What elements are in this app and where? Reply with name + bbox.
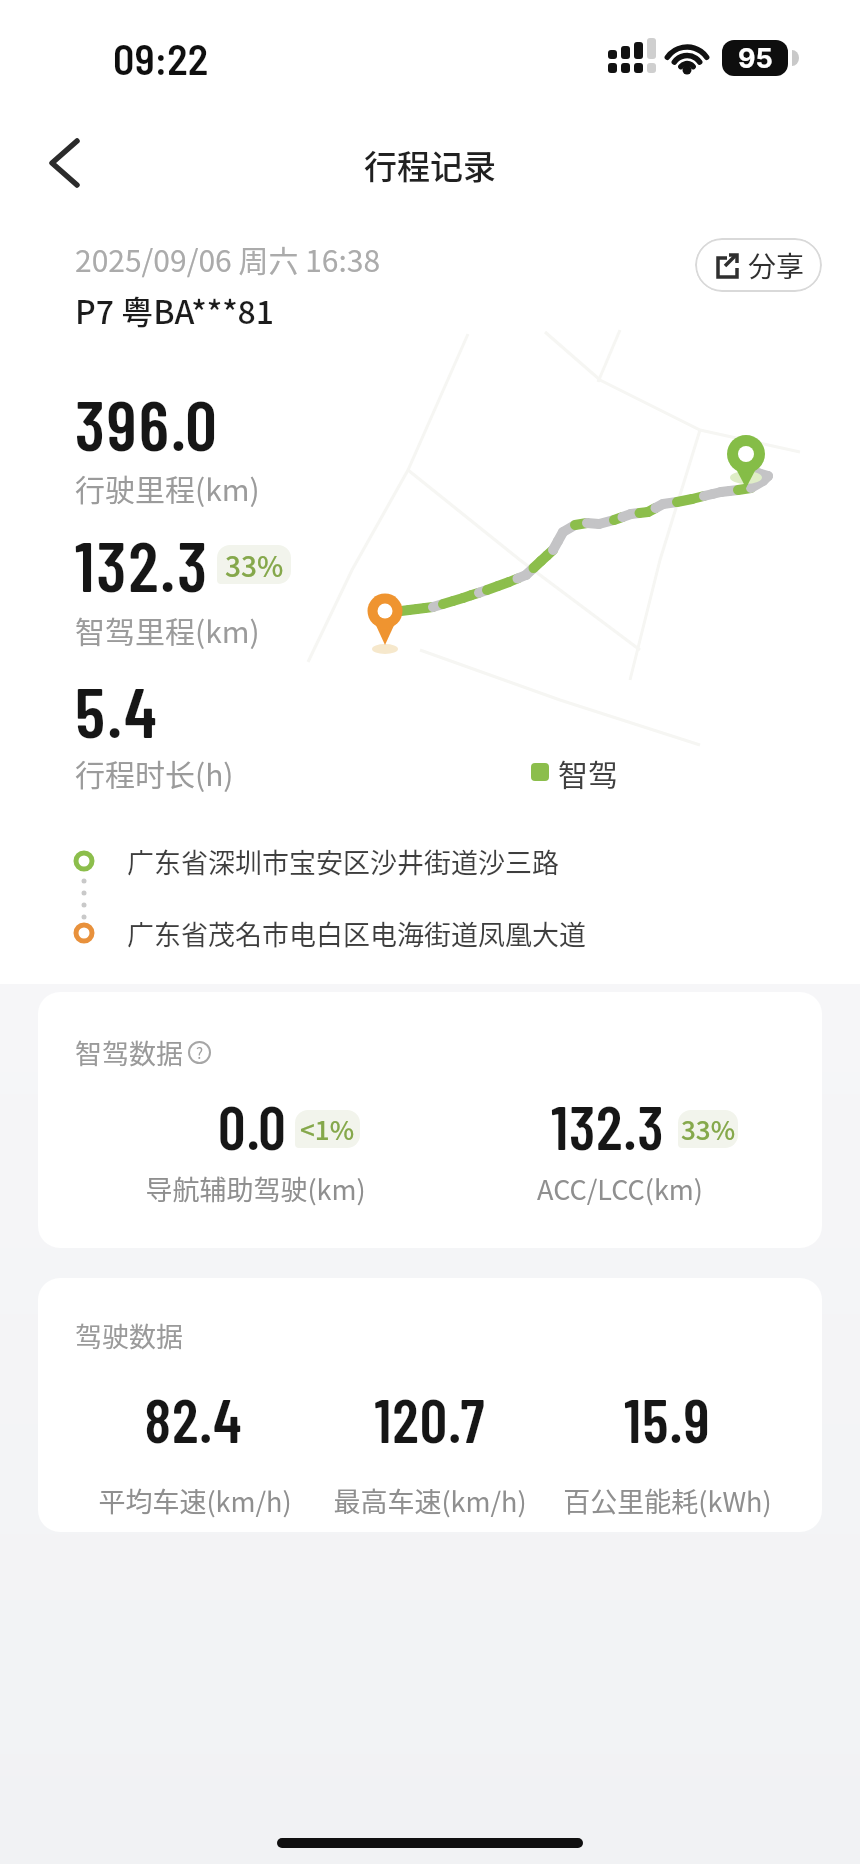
staticText: 分享 (748, 245, 805, 286)
staticText: 09:22 (113, 33, 209, 83)
staticText: 智驾里程(km) (75, 608, 260, 651)
staticText: 平均车速(km/h) (98, 1481, 292, 1520)
staticText: 驾驶数据 (75, 1316, 183, 1355)
staticText: 396.0 (75, 381, 219, 461)
staticText: 百公里能耗(kWh) (563, 1481, 772, 1520)
staticText: 行程记录 (364, 141, 496, 189)
staticText: 33% (681, 1110, 736, 1148)
staticText: 0.0 (218, 1089, 287, 1162)
staticText: ? (196, 1042, 204, 1064)
button[interactable]: 分享 (695, 238, 822, 292)
staticText: 132.3 (75, 522, 210, 602)
staticText: 行程时长(h) (75, 751, 234, 794)
staticText: 15.9 (624, 1382, 711, 1455)
staticText: ACC/LCC(km) (537, 1169, 703, 1208)
staticText: 120.7 (374, 1382, 486, 1455)
staticText: <1% (300, 1110, 355, 1148)
staticText: 最高车速(km/h) (333, 1481, 527, 1520)
staticText: 导航辅助驾驶(km) (145, 1169, 366, 1208)
staticText: 2025/09/06 周六 16:38 (75, 237, 381, 280)
staticText: 智驾数据 (75, 1033, 183, 1072)
staticText: 广东省茂名市电白区电海街道凤凰大道 (127, 914, 586, 953)
staticText: 广东省深圳市宝安区沙井街道沙三路 (127, 842, 559, 881)
staticText: 132.3 (551, 1089, 665, 1162)
staticText: 82.4 (144, 1382, 243, 1455)
staticText: P7 粤BA***81 (75, 287, 275, 333)
staticText: 5.4 (75, 668, 159, 748)
staticText: 95 (738, 42, 773, 75)
staticText: 33% (225, 545, 284, 584)
staticText: 行驶里程(km) (75, 466, 260, 509)
button[interactable] (30, 125, 90, 201)
staticText: 智驾 (558, 751, 618, 794)
